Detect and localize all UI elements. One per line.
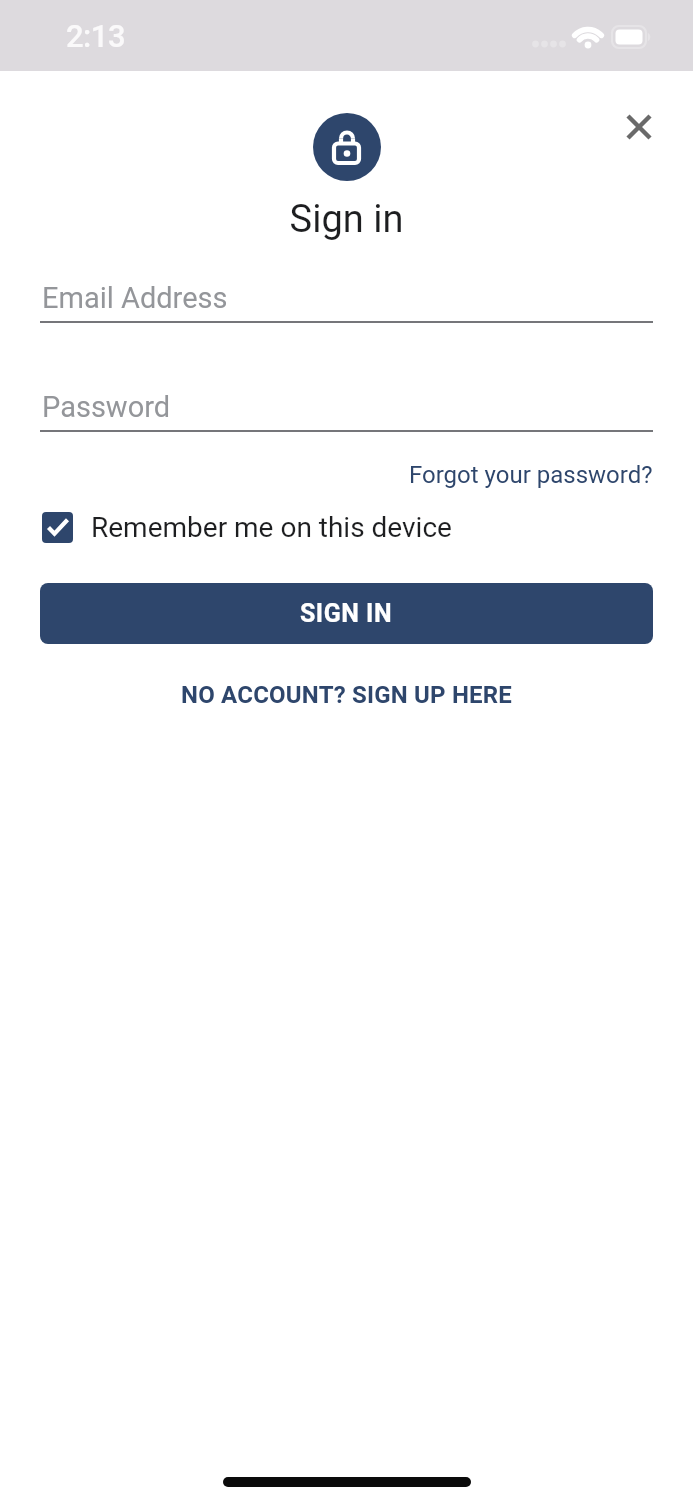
staticText: Remember me on this device (91, 511, 452, 544)
staticText: Sign in (0, 197, 693, 242)
staticText: Email Address (42, 281, 228, 315)
button[interactable]: Remember me on this device (42, 511, 653, 544)
staticText: SIGN IN (300, 599, 393, 628)
staticText: Password (42, 390, 171, 424)
button[interactable]: Password (40, 390, 653, 432)
button[interactable]: Email Address (40, 281, 653, 323)
staticText: 2:13 (66, 18, 126, 54)
button[interactable]: SIGN IN (40, 583, 653, 644)
button[interactable] (614, 102, 664, 152)
button[interactable]: NO ACCOUNT? SIGN UP HERE (181, 681, 513, 709)
button[interactable]: Forgot your password? (409, 461, 653, 489)
